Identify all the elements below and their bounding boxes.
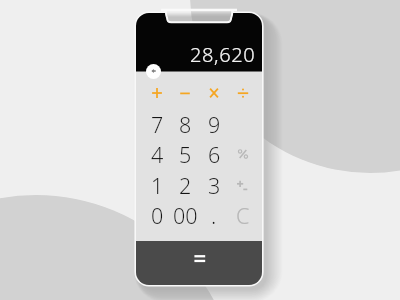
staticText: 5 xyxy=(179,140,192,168)
button[interactable]: 9 xyxy=(200,110,228,138)
button[interactable]: 1 xyxy=(143,171,171,199)
button[interactable]: 00 xyxy=(171,201,199,229)
button[interactable]: 0 xyxy=(143,201,171,229)
staticText: 3 xyxy=(208,171,221,199)
button[interactable]: Divide xyxy=(230,80,256,106)
button[interactable]: Back xyxy=(146,64,161,79)
button[interactable]: C xyxy=(229,201,257,229)
staticText: 2 xyxy=(179,171,192,199)
button[interactable]: 3 xyxy=(200,171,228,199)
button[interactable]: Toggle sign xyxy=(230,172,256,198)
button[interactable]: 2 xyxy=(171,171,199,199)
button[interactable]: 7 xyxy=(143,110,171,138)
staticText: C xyxy=(236,201,250,229)
button[interactable]: 4 xyxy=(143,140,171,168)
button[interactable]: Plus xyxy=(144,80,170,106)
button[interactable]: Multiply xyxy=(201,80,227,106)
staticText: 4 xyxy=(151,140,164,168)
staticText: 7 xyxy=(151,110,164,138)
button[interactable]: Minus xyxy=(172,80,198,106)
staticText: 28,620 xyxy=(190,41,256,65)
button[interactable]: 5 xyxy=(171,140,199,168)
staticText: 9 xyxy=(208,110,221,138)
staticText: . xyxy=(211,201,217,229)
staticText: 00 xyxy=(173,201,198,229)
staticText: 6 xyxy=(208,140,221,168)
staticText: 1 xyxy=(151,171,164,199)
button[interactable]: 6 xyxy=(200,140,228,168)
staticText: 0 xyxy=(151,201,164,229)
button[interactable]: 8 xyxy=(171,110,199,138)
button[interactable]: . xyxy=(200,201,228,229)
button[interactable]: Equals xyxy=(136,241,262,285)
staticText: 8 xyxy=(179,110,192,138)
button[interactable]: Percent xyxy=(230,141,256,167)
